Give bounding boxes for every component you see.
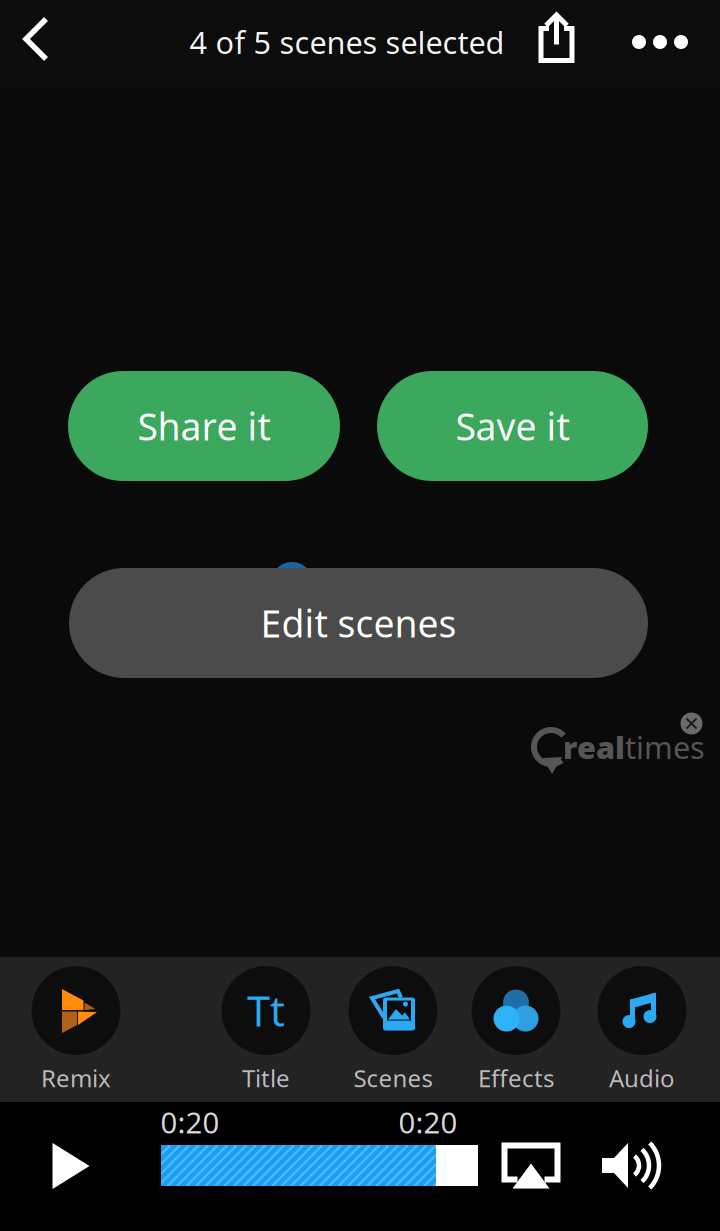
button[interactable]: Save it bbox=[377, 371, 648, 481]
button[interactable]: Edit scenes bbox=[69, 568, 648, 678]
button[interactable]: Scenes bbox=[334, 964, 452, 1096]
button[interactable]: Play bbox=[26, 1116, 116, 1216]
staticText: 0:20 bbox=[398, 1102, 457, 1141]
staticText: Effects bbox=[478, 1062, 554, 1094]
staticText: Audio bbox=[609, 1062, 675, 1094]
staticText: Title bbox=[242, 1062, 290, 1094]
staticText: Edit scenes bbox=[260, 598, 456, 648]
button[interactable]: Remove watermark bbox=[680, 712, 702, 734]
staticText: Scenes bbox=[353, 1062, 432, 1094]
button[interactable]: Share it bbox=[68, 371, 340, 481]
staticText: Tt bbox=[247, 983, 285, 1038]
button[interactable]: AirPlay bbox=[491, 1116, 571, 1216]
button[interactable]: Effects bbox=[457, 964, 575, 1096]
staticText: 4 of 5 scenes selected bbox=[189, 22, 504, 62]
button[interactable]: Tt bbox=[207, 964, 325, 1096]
staticText: Save it bbox=[455, 401, 569, 451]
button[interactable]: Audio bbox=[583, 964, 701, 1096]
button[interactable]: Back bbox=[0, 0, 74, 83]
staticText: realtimes bbox=[563, 727, 705, 767]
staticText: Share it bbox=[137, 401, 270, 451]
staticText: Remix bbox=[41, 1062, 111, 1094]
staticText: 0:20 bbox=[160, 1102, 219, 1141]
button[interactable]: Volume bbox=[590, 1116, 674, 1216]
button[interactable]: Share bbox=[523, 0, 589, 82]
button[interactable]: Remix bbox=[17, 964, 135, 1096]
button[interactable]: More options bbox=[618, 0, 702, 86]
